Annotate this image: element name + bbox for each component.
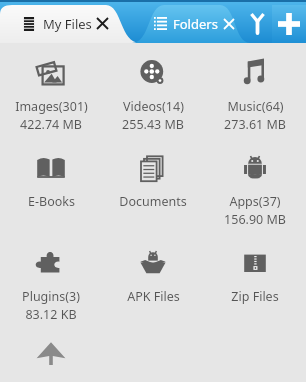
button[interactable]: My Files <box>0 0 142 43</box>
staticText: Zip Files <box>231 288 279 305</box>
button[interactable]: Tools <box>240 0 274 43</box>
staticText: Plugins(3) <box>22 288 80 305</box>
staticText: My Files <box>43 15 92 33</box>
button[interactable]: Music(64) <box>204 47 306 142</box>
staticText: 83.12 KB <box>25 306 77 323</box>
staticText: APK Files <box>127 288 180 305</box>
button[interactable]: New tab <box>272 0 306 43</box>
staticText: 156.90 MB <box>224 211 286 228</box>
staticText: Folders <box>173 15 218 33</box>
button[interactable]: Documents <box>102 142 204 237</box>
staticText: Documents <box>119 193 187 210</box>
staticText: 255.43 MB <box>122 116 184 133</box>
button[interactable]: APK Files <box>102 237 204 332</box>
staticText: Music(64) <box>227 98 284 115</box>
button[interactable]: Folders <box>126 0 250 43</box>
staticText: Videos(14) <box>123 98 184 115</box>
staticText: 422.74 MB <box>20 116 82 133</box>
button[interactable]: Zip Files <box>204 237 306 332</box>
button[interactable]: Apps(37) <box>204 142 306 237</box>
staticText: Images(301) <box>15 98 88 115</box>
staticText: E-Books <box>28 193 75 210</box>
staticText: 273.61 MB <box>224 116 286 133</box>
button[interactable]: E-Books <box>0 142 102 237</box>
button[interactable] <box>0 332 102 372</box>
button[interactable]: Videos(14) <box>102 47 204 142</box>
button[interactable]: Images(301) <box>0 47 102 142</box>
staticText: Apps(37) <box>229 193 281 210</box>
button[interactable]: Plugins(3) <box>0 237 102 332</box>
